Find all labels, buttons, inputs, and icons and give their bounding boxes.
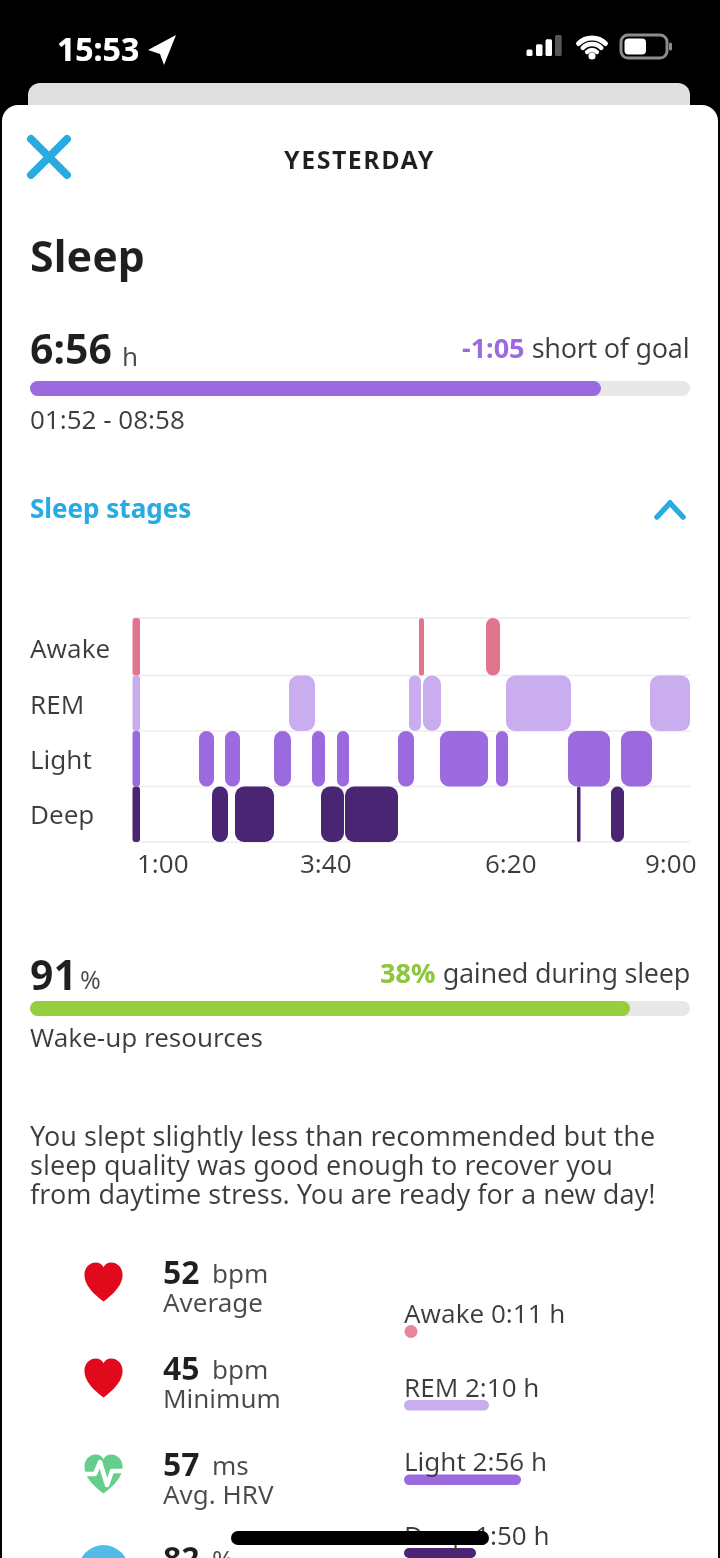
staticText: 6:20 <box>485 845 537 880</box>
staticText: 01:52 - 08:58 <box>30 401 185 436</box>
staticText: YESTERDAY <box>284 142 436 176</box>
staticText: Sleep stages <box>30 490 192 525</box>
button[interactable]: Sleep stages <box>0 480 720 530</box>
staticText: Light 2:56 h <box>404 1443 547 1478</box>
staticText: % <box>212 1541 234 1558</box>
staticText: REM <box>30 686 85 721</box>
staticText: bpm <box>212 1351 269 1386</box>
staticText: Deep <box>30 796 95 831</box>
staticText: bpm <box>212 1255 269 1290</box>
staticText: % <box>80 962 101 996</box>
staticText: h <box>122 338 139 373</box>
staticText: ms <box>212 1447 249 1482</box>
staticText: Awake 0:11 h <box>404 1295 566 1330</box>
staticText: Minimum <box>163 1380 281 1415</box>
staticText: Deep 1:50 h <box>404 1517 550 1552</box>
staticText: REM 2:10 h <box>404 1369 540 1404</box>
staticText: 82 <box>163 1536 200 1558</box>
staticText: Sleep <box>30 226 146 285</box>
staticText: from daytime stress. You are ready for a… <box>30 1175 656 1212</box>
staticText: 6:56 <box>30 320 112 376</box>
staticText: 38% <box>380 954 436 991</box>
staticText: short of goal <box>525 329 690 366</box>
staticText: -1:05 <box>462 329 525 366</box>
staticText: sleep quality was good enough to recover… <box>30 1146 613 1183</box>
staticText: Avg. HRV <box>163 1476 274 1511</box>
staticText: 57 <box>163 1442 200 1486</box>
staticText: 52 <box>163 1250 200 1294</box>
staticText: Light <box>30 741 92 776</box>
staticText: Awake <box>30 630 111 665</box>
staticText: 45 <box>163 1346 200 1390</box>
staticText: 3:40 <box>300 845 352 880</box>
staticText: You slept slightly less than recommended… <box>30 1117 656 1154</box>
staticText: 9:00 <box>645 845 697 880</box>
staticText: gained during sleep <box>436 954 690 991</box>
button[interactable] <box>24 132 74 182</box>
staticText: Wake-up resources <box>30 1019 263 1054</box>
staticText: 15:53 <box>57 27 140 71</box>
staticText: Average <box>163 1284 263 1319</box>
staticText: 91 <box>30 946 77 1002</box>
staticText: 1:00 <box>137 845 189 880</box>
